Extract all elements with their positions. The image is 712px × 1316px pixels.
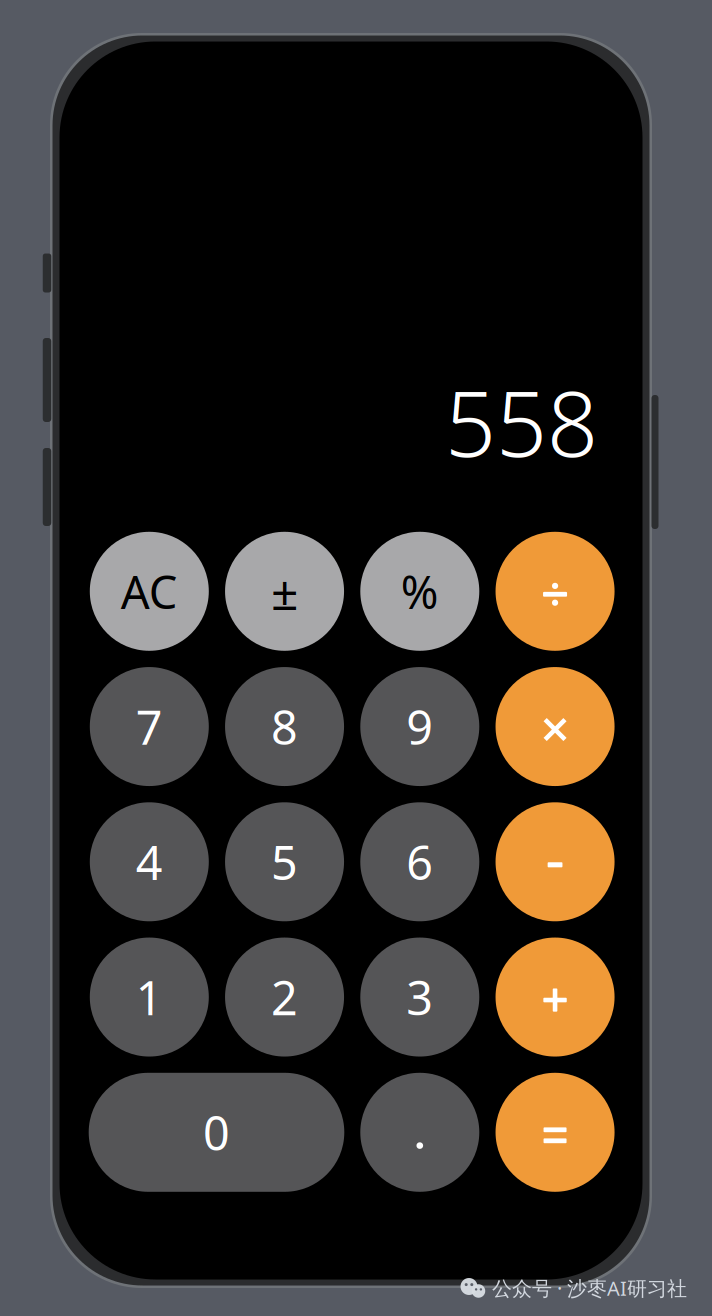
button[interactable]: Plus — [495, 937, 614, 1056]
staticText: 8 — [271, 696, 298, 758]
staticText: 7 — [136, 696, 163, 758]
button[interactable]: ± — [225, 532, 344, 651]
staticText: 558 — [445, 363, 598, 481]
staticText: 1 — [136, 966, 163, 1028]
button[interactable]: AC — [90, 532, 209, 651]
staticText: 2 — [271, 966, 298, 1028]
staticText: ± — [271, 559, 298, 623]
button[interactable]: 9 — [360, 667, 479, 786]
button[interactable]: Decimal point — [360, 1073, 479, 1192]
button[interactable]: Divide — [495, 532, 614, 651]
button[interactable]: % — [360, 532, 479, 651]
button[interactable]: Minus — [495, 802, 614, 921]
staticText: 公众号 · 沙枣AI研习社 — [492, 1275, 687, 1301]
button[interactable]: 3 — [360, 937, 479, 1056]
button[interactable]: 1 — [90, 937, 209, 1056]
button[interactable]: 2 — [225, 937, 344, 1056]
button[interactable]: 5 — [225, 802, 344, 921]
staticText: 4 — [136, 831, 163, 893]
button[interactable]: 4 — [90, 802, 209, 921]
button[interactable]: Equals — [495, 1073, 614, 1192]
staticText: 5 — [271, 831, 298, 893]
button[interactable]: 7 — [90, 667, 209, 786]
button[interactable]: 6 — [360, 802, 479, 921]
staticText: 9 — [406, 696, 433, 758]
button[interactable]: Multiply — [495, 667, 614, 786]
staticText: % — [401, 561, 439, 621]
staticText: 3 — [406, 966, 433, 1028]
button[interactable]: 8 — [225, 667, 344, 786]
button[interactable]: 0 — [89, 1073, 344, 1192]
staticText: AC — [121, 561, 178, 621]
staticText: 6 — [406, 831, 433, 893]
staticText: 0 — [203, 1101, 230, 1163]
